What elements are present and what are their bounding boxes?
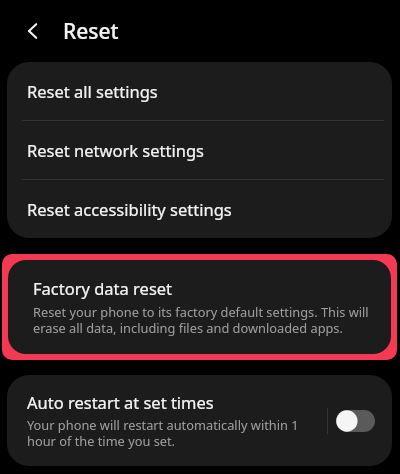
staticText: Reset all settings (27, 80, 158, 102)
button[interactable]: Auto restart toggle, off (335, 404, 375, 438)
button[interactable]: Auto restart at set times (7, 375, 327, 466)
staticText: Reset network settings (27, 139, 204, 161)
staticText: Auto restart at set times (27, 391, 214, 413)
button[interactable]: Reset accessibility settings (7, 180, 392, 238)
button[interactable]: Back (16, 14, 50, 48)
staticText: Your phone will restart automatically wi… (27, 416, 323, 450)
staticText: Factory data reset (33, 277, 173, 299)
button[interactable]: Reset network settings (7, 121, 392, 179)
staticText: Reset your phone to its factory default … (33, 303, 373, 337)
staticText: Reset accessibility settings (27, 198, 232, 220)
button[interactable]: Factory data reset (8, 260, 391, 354)
staticText: Reset (63, 17, 119, 46)
button[interactable]: Reset all settings (7, 62, 392, 120)
